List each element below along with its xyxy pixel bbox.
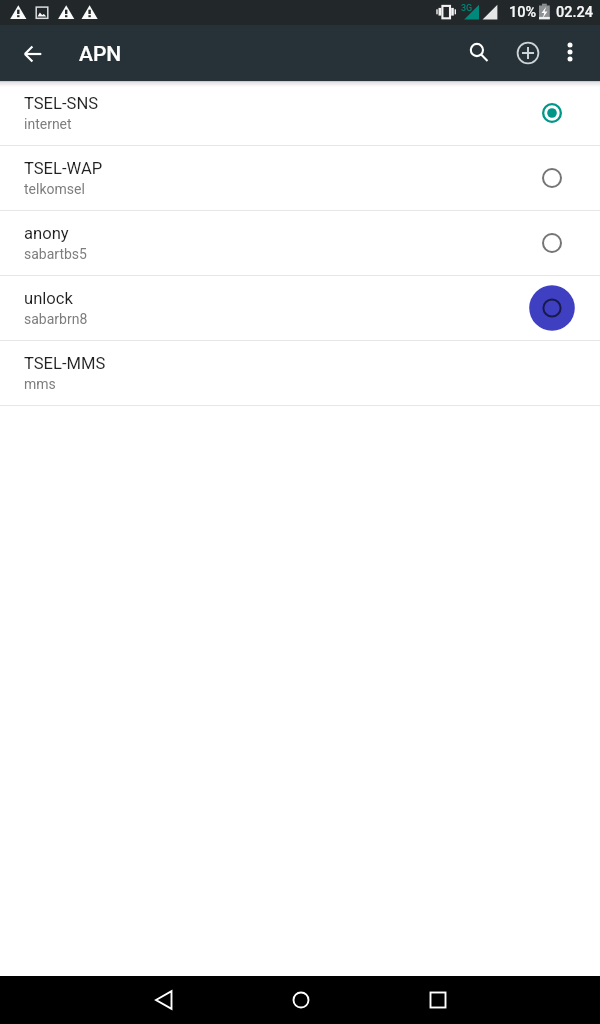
staticText: mms	[24, 376, 56, 392]
button[interactable]: Search	[455, 29, 503, 77]
staticText: telkomsel	[24, 181, 85, 197]
staticText: 10%	[509, 4, 537, 21]
staticText: unlock	[24, 289, 73, 308]
button[interactable]: TSEL-SNS	[0, 81, 600, 145]
button[interactable]: Home	[277, 976, 325, 1024]
staticText: TSEL-WAP	[24, 159, 103, 178]
staticText: sabartbs5	[24, 246, 87, 262]
other: Status bar	[0, 0, 600, 25]
button[interactable]: More options	[548, 30, 592, 74]
staticText: TSEL-MMS	[24, 354, 106, 373]
staticText: APN	[79, 42, 122, 67]
staticText: TSEL-SNS	[24, 94, 99, 113]
button[interactable]: Back	[140, 976, 188, 1024]
staticText: sabarbrn8	[24, 311, 88, 327]
button[interactable]: Navigate up	[10, 31, 55, 76]
button[interactable]: Recent apps	[414, 976, 462, 1024]
button[interactable]: TSEL-WAP	[0, 146, 600, 210]
button[interactable]: TSEL-MMS	[0, 341, 600, 405]
button[interactable]: anony	[0, 211, 600, 275]
staticText: 02.24	[556, 4, 593, 21]
staticText: 3G	[461, 3, 473, 14]
button[interactable]: unlock	[0, 276, 600, 340]
button[interactable]: Add new APN	[503, 28, 553, 78]
staticText: internet	[24, 116, 72, 132]
staticText: anony	[24, 224, 69, 243]
